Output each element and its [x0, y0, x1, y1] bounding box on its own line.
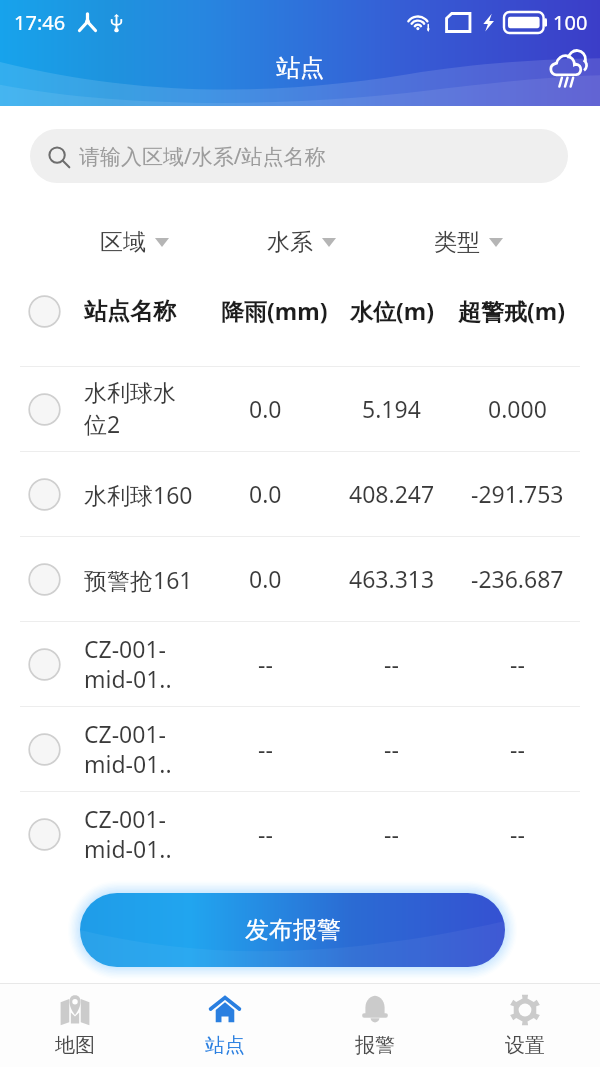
button[interactable]: 水系 — [259, 220, 344, 265]
staticText: CZ-001- mid-01.. — [84, 803, 172, 865]
staticText: 请输入区域/水系/站点名称 — [79, 142, 326, 171]
staticText: -- — [258, 648, 273, 679]
button[interactable]: 发布报警 — [80, 893, 505, 967]
staticText: 水位(m) — [350, 295, 435, 326]
staticText: -- — [258, 818, 273, 849]
staticText: 预警抢161 — [84, 564, 193, 595]
staticText: -- — [384, 648, 399, 679]
staticText: 降雨(mm) — [221, 295, 328, 326]
staticText: 报警 — [355, 1033, 395, 1058]
staticText: -- — [510, 818, 525, 849]
staticText: -- — [510, 733, 525, 764]
button[interactable]: CZ-001- mid-01.. — [0, 707, 600, 791]
staticText: 站点 — [276, 53, 324, 83]
staticText: 0.0 — [249, 393, 282, 424]
staticText: CZ-001- mid-01.. — [84, 633, 172, 695]
button[interactable]: CZ-001- mid-01.. — [0, 792, 600, 876]
button[interactable]: 站点 — [150, 984, 300, 1067]
staticText: -- — [258, 733, 273, 764]
staticText: 100 — [553, 9, 588, 36]
staticText: 地图 — [55, 1033, 95, 1058]
button[interactable]: 水利球160 — [0, 452, 600, 536]
button[interactable]: 设置 — [450, 984, 600, 1067]
staticText: 0.0 — [249, 478, 282, 509]
staticText: -- — [384, 818, 399, 849]
staticText: 水利球160 — [84, 479, 193, 510]
staticText: 站点 — [205, 1033, 245, 1058]
staticText: 0.000 — [488, 393, 547, 424]
button[interactable]: 地图 — [0, 984, 150, 1067]
staticText: 发布报警 — [245, 915, 341, 945]
staticText: 水利球水 位2 — [84, 379, 176, 440]
staticText: CZ-001- mid-01.. — [84, 718, 172, 780]
button[interactable]: 请输入区域/水系/站点名称 — [30, 129, 568, 183]
button[interactable]: 区域 — [92, 220, 177, 265]
staticText: 17:46 — [14, 9, 66, 36]
staticText: -236.687 — [471, 563, 564, 594]
button[interactable]: Weather — [542, 43, 592, 93]
staticText: 类型 — [434, 228, 480, 257]
staticText: 站点名称 — [84, 297, 176, 326]
staticText: 408.247 — [349, 478, 435, 509]
button[interactable]: 预警抢161 — [0, 537, 600, 621]
staticText: 区域 — [100, 228, 146, 257]
staticText: 超警戒(m) — [458, 295, 566, 326]
staticText: -- — [384, 733, 399, 764]
staticText: 0.0 — [249, 563, 282, 594]
button[interactable]: 水利球水 位2 — [0, 367, 600, 451]
button[interactable]: 报警 — [300, 984, 450, 1067]
staticText: 设置 — [505, 1033, 545, 1058]
button[interactable]: 类型 — [426, 220, 511, 265]
staticText: 463.313 — [349, 563, 435, 594]
button[interactable]: CZ-001- mid-01.. — [0, 622, 600, 706]
staticText: -- — [510, 648, 525, 679]
staticText: -291.753 — [471, 478, 564, 509]
staticText: 5.194 — [362, 393, 421, 424]
staticText: 水系 — [267, 228, 313, 257]
